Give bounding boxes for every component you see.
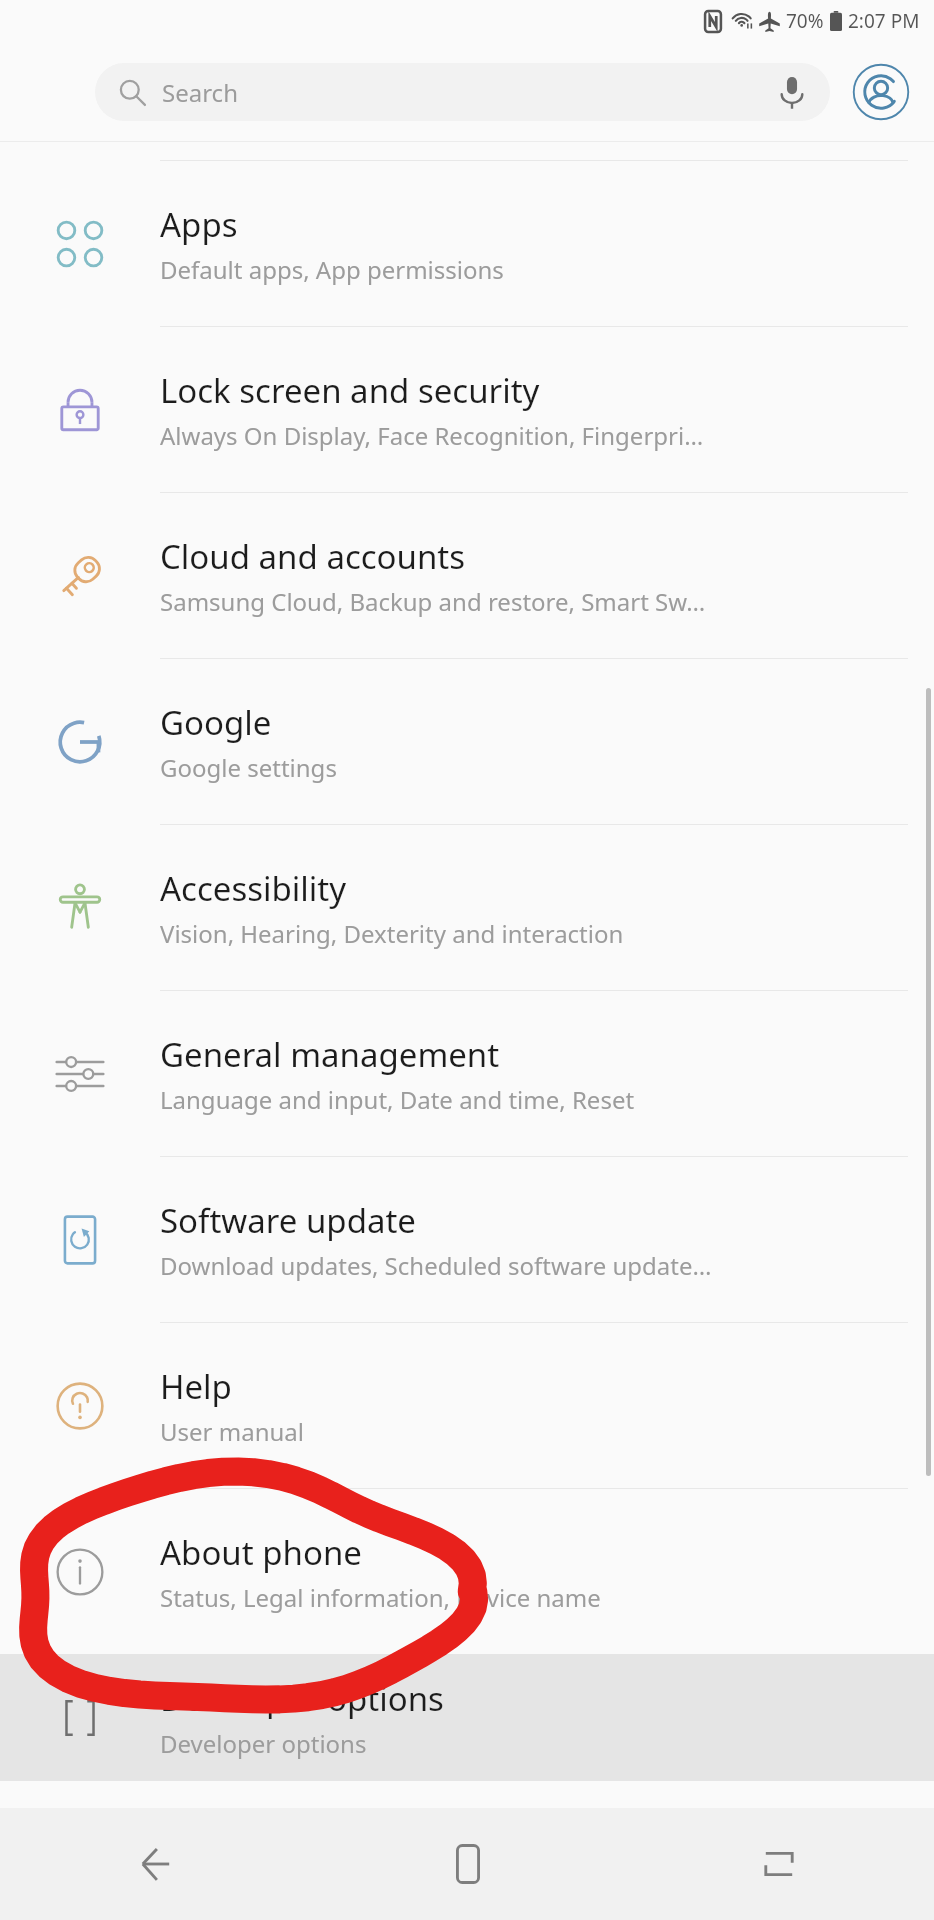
staticText: Apps: [160, 202, 238, 247]
button[interactable]: Accessibility: [0, 825, 934, 990]
staticText: Google: [160, 700, 272, 745]
button[interactable]: Cloud and accounts: [0, 493, 934, 658]
button[interactable]: Developer options: [0, 1654, 934, 1781]
button[interactable]: Google: [0, 659, 934, 824]
button[interactable]: Software update: [0, 1157, 934, 1322]
staticText: Always On Display, Face Recognition, Fin…: [160, 419, 704, 452]
staticText: User manual: [160, 1415, 304, 1448]
button[interactable]: Apps: [0, 161, 934, 326]
button[interactable]: Account: [850, 61, 912, 123]
staticText: Software update: [160, 1198, 416, 1243]
staticText: Search: [162, 76, 780, 109]
button[interactable]: Back: [0, 1808, 312, 1920]
staticText: Vision, Hearing, Dexterity and interacti…: [160, 917, 624, 950]
button[interactable]: Recents: [623, 1808, 934, 1920]
staticText: Status, Legal information, Device name: [160, 1581, 601, 1614]
staticText: Download updates, Scheduled software upd…: [160, 1249, 712, 1282]
button[interactable]: Home: [312, 1808, 623, 1920]
staticText: 2:07 PM: [848, 8, 920, 34]
staticText: Language and input, Date and time, Reset: [160, 1083, 635, 1116]
staticText: Developer options: [160, 1676, 444, 1721]
staticText: Google settings: [160, 751, 337, 784]
button[interactable]: General management: [0, 991, 934, 1156]
staticText: About phone: [160, 1530, 362, 1575]
button[interactable]: Help: [0, 1323, 934, 1488]
staticText: 70%: [786, 8, 824, 34]
staticText: Default apps, App permissions: [160, 253, 504, 286]
button[interactable]: Search: [95, 63, 830, 121]
staticText: Accessibility: [160, 866, 347, 911]
staticText: Cloud and accounts: [160, 534, 466, 579]
staticText: Developer options: [160, 1727, 367, 1760]
button[interactable]: About phone: [0, 1489, 934, 1654]
staticText: Help: [160, 1364, 232, 1409]
staticText: Samsung Cloud, Backup and restore, Smart…: [160, 585, 706, 618]
staticText: General management: [160, 1032, 500, 1077]
staticText: Lock screen and security: [160, 368, 540, 413]
button[interactable]: Lock screen and security: [0, 327, 934, 492]
